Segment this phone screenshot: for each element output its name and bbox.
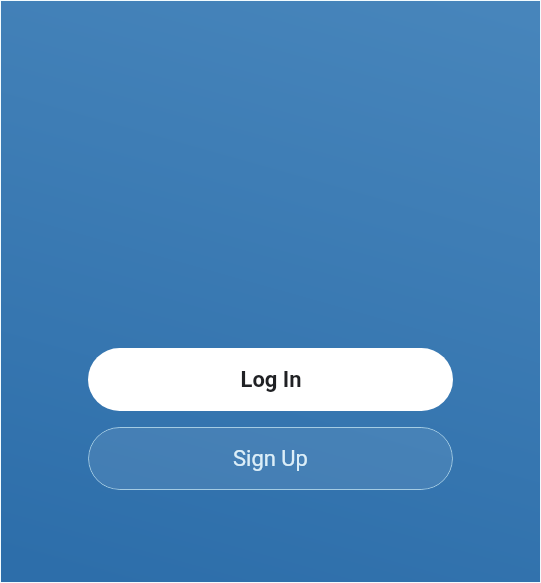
staticText: Sign Up [233,446,308,472]
staticText: Log In [240,367,302,393]
button[interactable]: Sign Up [88,427,453,490]
button[interactable]: Log In [88,348,453,411]
